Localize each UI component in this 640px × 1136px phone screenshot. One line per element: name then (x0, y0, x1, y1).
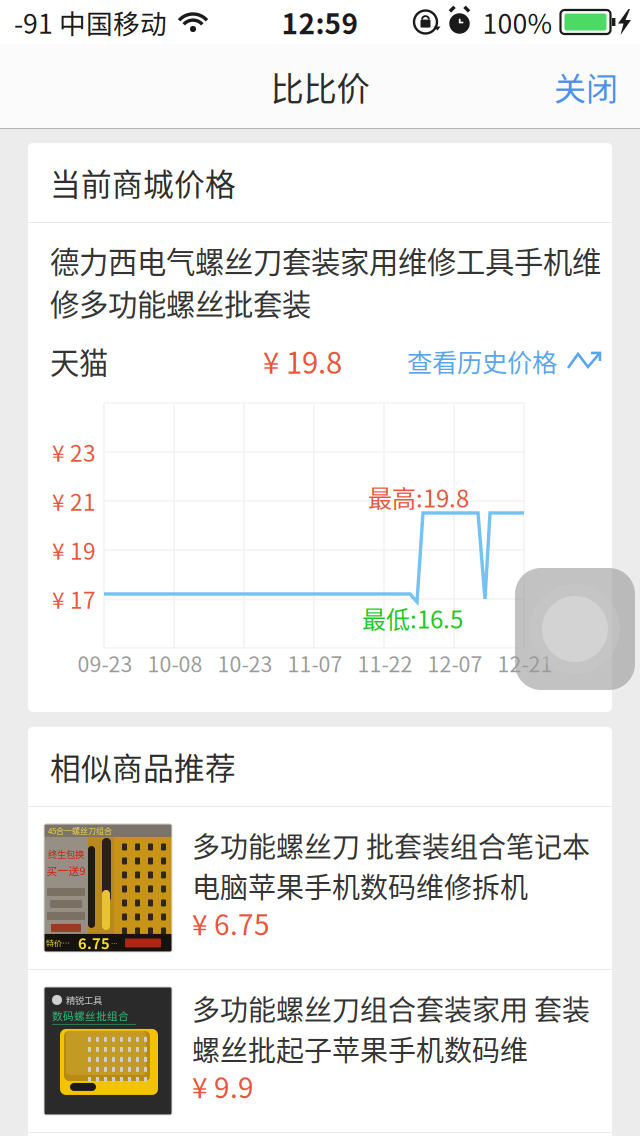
button[interactable]: 终生包换 (28, 807, 612, 969)
staticText: 查看历史价格 (407, 343, 557, 379)
staticText: 最高:19.8 (368, 480, 469, 514)
staticText: 元起 (111, 938, 124, 948)
staticText: 10-08 (147, 647, 202, 678)
staticText: -91 中国移动 (14, 3, 167, 41)
staticText: 比比价 (270, 62, 369, 111)
staticText: 多功能螺丝刀 批套装组合笔记本电脑苹果手机数码维修拆机 (192, 825, 590, 906)
staticText: 精锐工具 (66, 993, 102, 1007)
staticText: 买一送9 (46, 863, 85, 878)
button[interactable]: 关闭 (532, 47, 640, 126)
staticText: ¥ 19 (52, 533, 96, 566)
staticText: 12-21 (497, 647, 552, 678)
staticText: 09-23 (77, 647, 132, 678)
button[interactable]: 精锐工具 (28, 970, 612, 1132)
staticText: 特价促销 (46, 937, 77, 949)
staticText: 12-07 (427, 647, 482, 678)
staticText: 6.75 (78, 932, 110, 953)
staticText: ¥ 21 (52, 484, 96, 517)
staticText: 100% (482, 3, 552, 41)
staticText: 终生包换 (48, 847, 84, 861)
staticText: 当前商城价格 (50, 160, 236, 205)
staticText: 数码螺丝批组合 (52, 1008, 129, 1023)
staticText: ¥ 23 (52, 435, 96, 468)
staticText: 多功能螺丝刀组合套装家用 套装螺丝批起子苹果手机数码维 (192, 988, 590, 1069)
staticText: ¥ 6.75 (192, 903, 270, 943)
button[interactable]: 查看历史价格 (407, 342, 607, 380)
staticText: 德力西电气螺丝刀套装家用维修工具手机维修多功能螺丝批套装 (50, 239, 601, 324)
staticText: 关闭 (554, 63, 618, 110)
staticText: 最低:16.5 (362, 601, 463, 635)
staticText: 11-07 (287, 647, 342, 678)
staticText: 11-22 (357, 647, 412, 678)
staticText: 天猫 (50, 340, 108, 382)
staticText: 12:59 (281, 2, 358, 42)
staticText: 45合一螺丝刀组合 (48, 825, 112, 836)
staticText: ¥ 9.9 (192, 1066, 254, 1106)
staticText: 10-23 (217, 647, 272, 678)
staticText: ¥ 17 (52, 582, 96, 615)
staticText: 相似商品推荐 (50, 744, 236, 789)
staticText: ¥ 19.8 (263, 340, 342, 382)
